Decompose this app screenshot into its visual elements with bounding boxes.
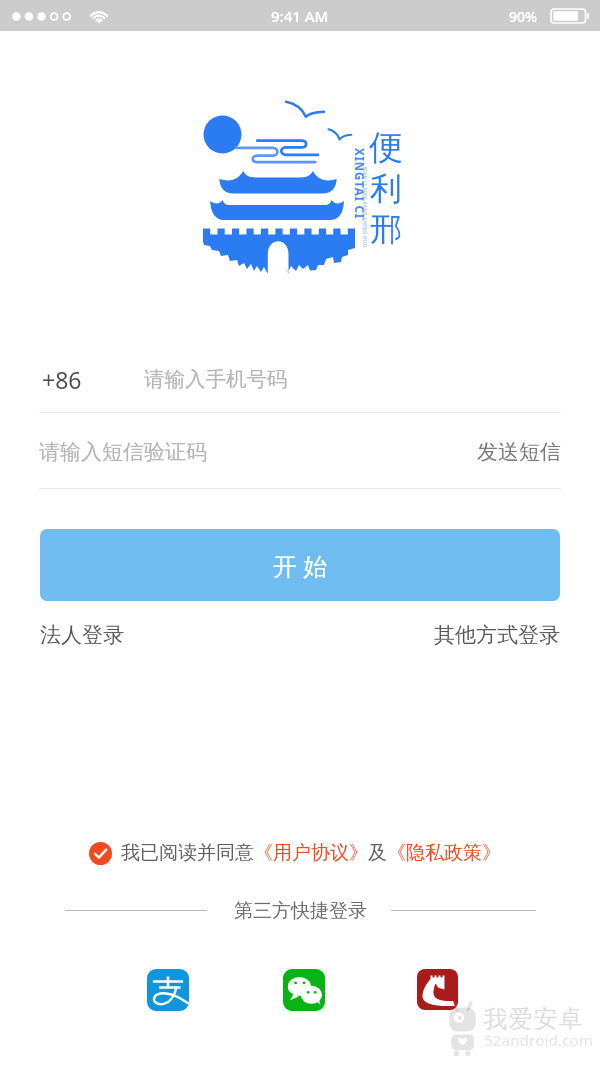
- button[interactable]: Sign in with Alipay: [147, 969, 189, 1011]
- button[interactable]: 《用户协议》: [254, 841, 368, 865]
- staticText: 及: [368, 841, 387, 865]
- staticText: BIAN LI XING RANG SHENG HUO GENG MEI HAO: [362, 167, 368, 247]
- staticText: 邢: [370, 209, 402, 249]
- staticText: 请输入手机号码: [144, 366, 288, 392]
- button[interactable]: Agree to terms checkbox: [89, 842, 112, 865]
- button[interactable]: 开 始: [40, 529, 560, 601]
- staticText: 其他方式登录: [434, 622, 560, 648]
- button[interactable]: 请输入短信验证码: [39, 439, 477, 465]
- button[interactable]: 法人登录: [40, 622, 124, 648]
- staticText: 发送短信: [477, 439, 561, 465]
- staticText: 第三方快捷登录: [234, 899, 367, 923]
- staticText: 52android.com: [484, 1030, 594, 1050]
- staticText: XINGTAI CITY: [351, 148, 367, 220]
- staticText: +86: [42, 364, 82, 395]
- button[interactable]: 其他方式登录: [434, 622, 560, 648]
- staticText: 《用户协议》: [254, 841, 368, 865]
- staticText: 法人登录: [40, 622, 124, 648]
- staticText: 我爱安卓: [483, 1004, 583, 1034]
- staticText: 我已阅读并同意: [121, 841, 254, 865]
- staticText: 请输入短信验证码: [39, 439, 207, 465]
- button[interactable]: 《隐私政策》: [387, 841, 501, 865]
- button[interactable]: Sign in with Hebei account: [417, 969, 458, 1010]
- button[interactable]: Sign in with WeChat: [283, 969, 325, 1011]
- staticText: 《隐私政策》: [387, 841, 501, 865]
- staticText: 90%: [509, 7, 537, 26]
- button[interactable]: 发送短信: [477, 439, 561, 465]
- staticText: 利: [370, 169, 402, 209]
- button[interactable]: +86: [0, 348, 600, 410]
- staticText: 9:41 AM: [271, 6, 329, 26]
- staticText: 开 始: [273, 549, 328, 582]
- staticText: 便: [369, 126, 403, 169]
